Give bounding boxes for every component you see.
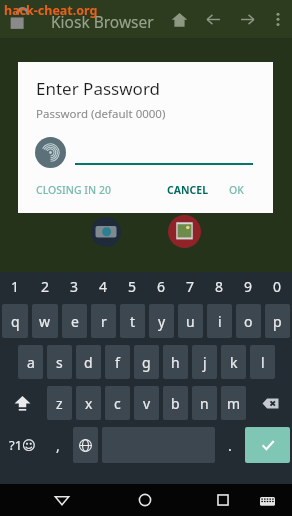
button[interactable]: , (45, 425, 71, 465)
button[interactable]: More options (270, 11, 286, 27)
button[interactable]: i (207, 304, 232, 338)
button[interactable]: Shift (0, 384, 45, 422)
button[interactable]: ?1☺ (0, 425, 45, 465)
staticText: w (39, 312, 51, 331)
button[interactable]: s (47, 345, 72, 379)
button[interactable]: l (250, 345, 275, 379)
staticText: 3 (70, 277, 79, 296)
staticText: c (114, 394, 121, 413)
button[interactable]: Back (54, 492, 70, 508)
button[interactable]: Recent apps (216, 493, 230, 507)
button[interactable]: o (236, 304, 261, 338)
button[interactable]: 1 (0, 272, 30, 300)
staticText: e (71, 312, 79, 331)
staticText: CLOSING IN 20 (36, 183, 111, 197)
button[interactable]: y (149, 304, 174, 338)
button[interactable]: Change language (73, 427, 98, 463)
staticText: hack-cheat.org (4, 2, 98, 19)
button[interactable]: Gallery (168, 215, 201, 248)
button[interactable]: OK (229, 183, 244, 197)
staticText: p (273, 312, 282, 331)
button[interactable]: . (217, 425, 243, 465)
staticText: d (84, 353, 93, 372)
staticText: 2 (41, 277, 50, 296)
button[interactable]: j (192, 345, 217, 379)
staticText: 8 (215, 277, 224, 296)
button[interactable] (75, 140, 253, 166)
button[interactable]: Lock (7, 6, 33, 32)
staticText: h (171, 353, 180, 372)
button[interactable]: 9 (234, 272, 263, 300)
staticText: a (27, 353, 35, 372)
button[interactable]: 2 (30, 272, 60, 300)
staticText: u (186, 312, 195, 331)
button[interactable]: Home (137, 492, 153, 508)
button[interactable]: n (192, 386, 217, 420)
staticText: n (200, 394, 209, 413)
button[interactable]: Back (205, 11, 222, 28)
staticText: 9 (244, 277, 253, 296)
button[interactable]: Camera (91, 217, 121, 247)
button[interactable]: m (221, 386, 246, 420)
staticText: m (227, 394, 241, 413)
staticText: k (230, 353, 238, 372)
button[interactable]: a (18, 345, 43, 379)
button[interactable]: q (2, 304, 28, 338)
staticText: 0 (273, 277, 282, 296)
button[interactable]: h (163, 345, 188, 379)
button[interactable]: b (163, 386, 188, 420)
button[interactable]: CLOSING IN 20 (36, 183, 111, 197)
button[interactable]: k (221, 345, 246, 379)
button[interactable]: u (178, 304, 203, 338)
button[interactable]: z (47, 386, 72, 420)
staticText: OK (229, 183, 244, 197)
button[interactable]: f (105, 345, 130, 379)
staticText: z (56, 394, 63, 413)
staticText: f (115, 353, 120, 372)
button[interactable]: 5 (118, 272, 147, 300)
staticText: i (218, 312, 222, 331)
staticText: CANCEL (167, 183, 209, 197)
staticText: 6 (157, 277, 166, 296)
button[interactable]: x (76, 386, 101, 420)
button[interactable]: c (105, 386, 130, 420)
button[interactable]: CANCEL (167, 183, 209, 197)
staticText: b (171, 394, 180, 413)
button[interactable]: w (32, 304, 58, 338)
button[interactable]: 3 (60, 272, 89, 300)
button[interactable]: p (265, 304, 290, 338)
button[interactable]: 4 (89, 272, 118, 300)
staticText: x (85, 394, 93, 413)
button[interactable]: Enter (245, 427, 290, 463)
staticText: o (244, 312, 253, 331)
staticText: g (142, 353, 151, 372)
staticText: . (228, 436, 232, 455)
staticText: v (143, 394, 151, 413)
button[interactable]: g (134, 345, 159, 379)
button[interactable]: Backspace (248, 384, 292, 422)
button[interactable]: 6 (147, 272, 176, 300)
button[interactable]: r (91, 304, 116, 338)
button[interactable]: e (62, 304, 87, 338)
button[interactable]: v (134, 386, 159, 420)
button[interactable]: 0 (263, 272, 292, 300)
button[interactable]: d (76, 345, 101, 379)
button[interactable]: Home (171, 11, 188, 28)
staticText: y (158, 312, 166, 331)
staticText: j (203, 353, 207, 372)
staticText: t (130, 312, 136, 331)
button[interactable]: Forward (239, 11, 256, 28)
button[interactable]: Fingerprint (35, 137, 66, 168)
staticText: , (56, 436, 60, 455)
staticText: 1 (11, 277, 20, 296)
staticText: Password (default 0000) (36, 106, 166, 122)
staticText: ?1☺ (9, 436, 36, 454)
staticText: r (101, 312, 107, 331)
button[interactable]: Switch keyboard (260, 494, 275, 509)
staticText: 5 (128, 277, 137, 296)
button[interactable]: 7 (176, 272, 205, 300)
button[interactable]: t (120, 304, 145, 338)
button[interactable]: 8 (205, 272, 234, 300)
staticText: 7 (186, 277, 195, 296)
